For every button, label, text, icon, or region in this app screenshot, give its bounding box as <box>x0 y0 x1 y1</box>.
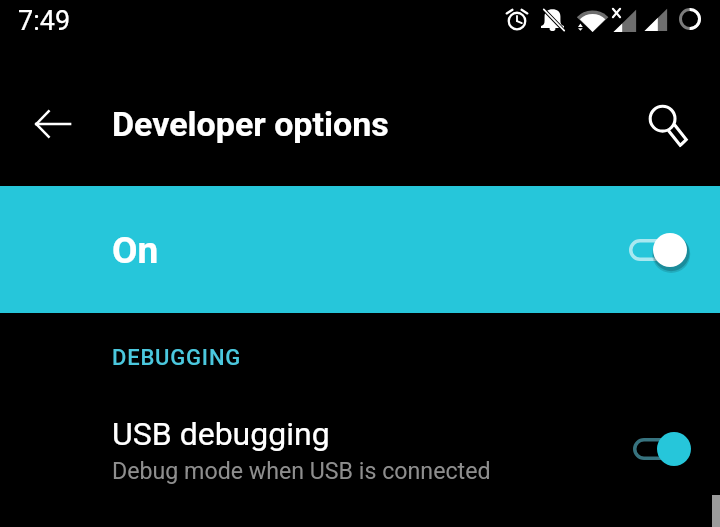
button[interactable]: On <box>0 186 720 313</box>
button[interactable]: USB debugging <box>0 395 720 527</box>
button[interactable]: Developer options on <box>629 229 687 271</box>
staticText: 7:49 <box>18 5 71 37</box>
staticText: Debug mode when USB is connected <box>112 457 491 484</box>
button[interactable]: Search <box>640 97 694 151</box>
button[interactable]: Navigate up <box>26 97 80 151</box>
staticText: Developer options <box>112 104 389 144</box>
staticText: DEBUGGING <box>112 345 242 371</box>
button[interactable]: USB debugging toggle <box>633 428 691 470</box>
staticText: On <box>112 229 159 272</box>
staticText: USB debugging <box>112 415 330 453</box>
